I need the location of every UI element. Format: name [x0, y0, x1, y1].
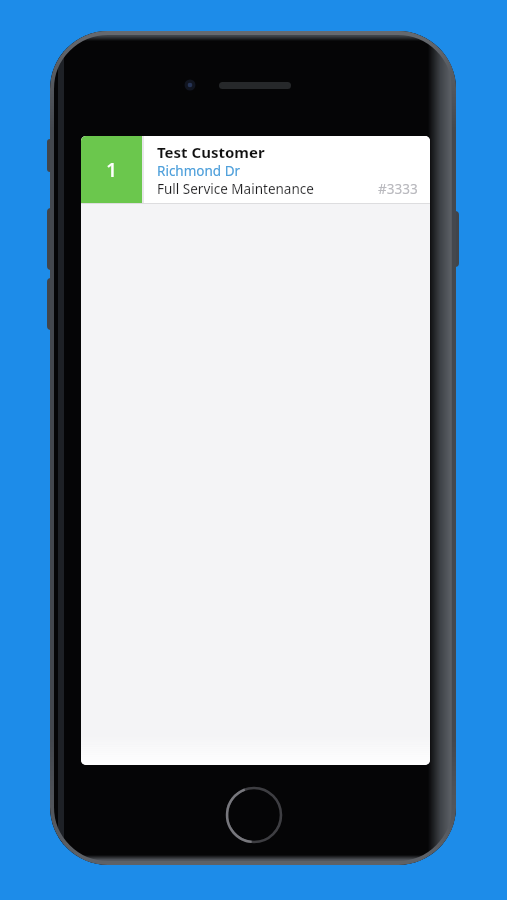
- staticText: Richmond Dr: [157, 162, 241, 180]
- button[interactable]: 1: [81, 136, 430, 203]
- staticText: Test Customer: [157, 142, 265, 162]
- staticText: 1: [106, 156, 118, 183]
- staticText: Full Service Maintenance: [157, 180, 314, 198]
- staticText: #3333: [378, 180, 418, 198]
